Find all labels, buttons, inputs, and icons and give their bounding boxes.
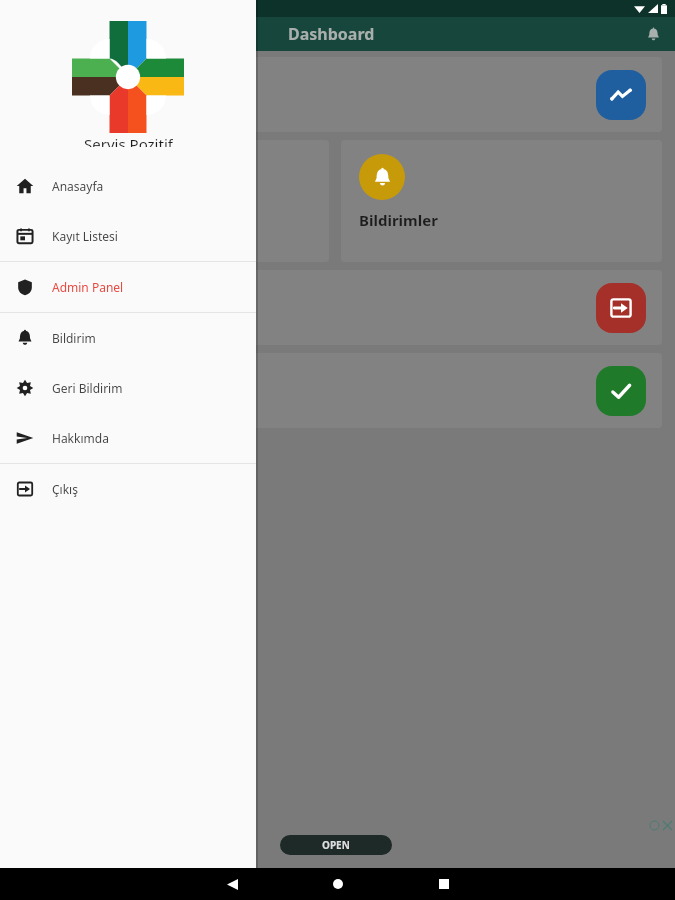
button[interactable]: Admin Panel — [0, 262, 256, 312]
button[interactable]: Home — [315, 868, 361, 900]
button[interactable]: Çıkış — [0, 464, 256, 514]
button[interactable] — [8, 270, 662, 345]
button[interactable]: Bildirim — [0, 313, 256, 363]
staticText: Bildirim — [52, 330, 96, 346]
staticText: Bildirimler — [359, 210, 438, 230]
staticText: Dashboard — [288, 23, 375, 45]
button[interactable]: Kayıt Listesi — [0, 211, 256, 261]
button[interactable]: Back — [209, 868, 255, 900]
staticText: Admin Panel — [52, 279, 124, 295]
button[interactable]: Geri Bildirim — [0, 363, 256, 413]
staticText: Anasayfa — [52, 178, 104, 194]
button[interactable] — [8, 140, 329, 262]
staticText: Servis Pozitif — [84, 134, 173, 147]
button[interactable] — [8, 57, 662, 132]
staticText: Kayıt Listesi — [52, 228, 118, 244]
button[interactable]: OPEN — [280, 835, 392, 855]
staticText: Çıkış — [52, 481, 78, 497]
staticText: Hakkımda — [52, 430, 109, 446]
staticText: Geri Bildirim — [52, 380, 123, 396]
button[interactable]: Hakkımda — [0, 413, 256, 463]
button[interactable] — [8, 353, 662, 428]
button[interactable]: Notifications — [639, 20, 667, 48]
button[interactable]: Anasayfa — [0, 161, 256, 211]
staticText: OPEN — [322, 838, 350, 852]
button[interactable]: Recents — [421, 868, 467, 900]
button[interactable]: Bildirimler — [341, 140, 662, 262]
